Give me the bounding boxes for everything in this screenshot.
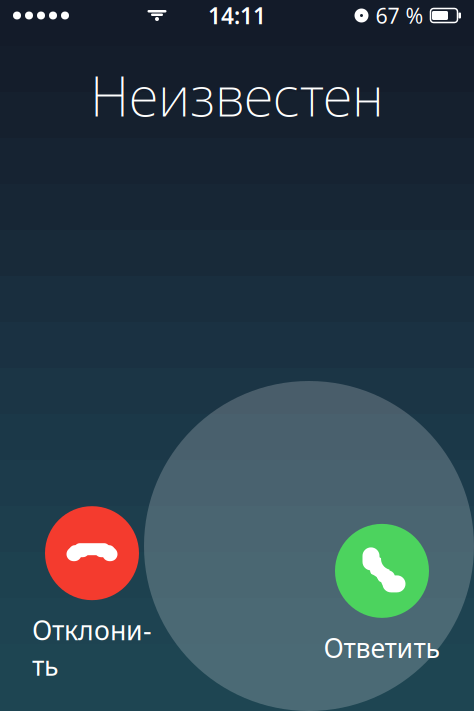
staticText: Ответить: [323, 630, 440, 665]
staticText: Неизвестен: [90, 59, 384, 132]
button[interactable]: Ответить: [317, 524, 447, 665]
staticText: Отклонить: [32, 612, 152, 683]
staticText: 14:11: [208, 0, 266, 30]
button[interactable]: Отклонить: [27, 506, 157, 683]
staticText: 67 %: [375, 1, 423, 30]
